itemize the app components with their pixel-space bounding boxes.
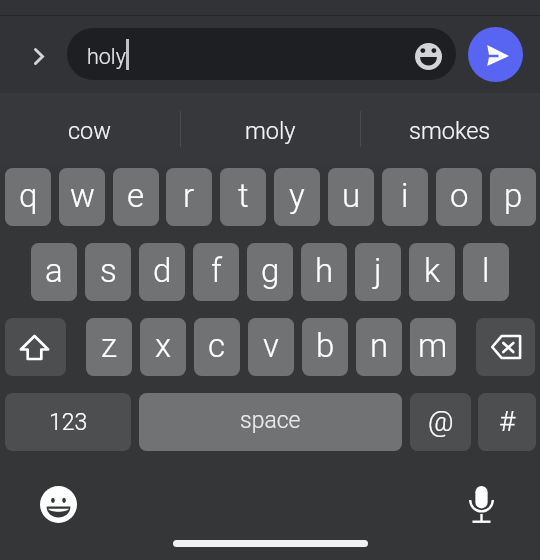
staticText: d [153,251,172,290]
button[interactable]: Emoji [412,40,444,72]
staticText: # [499,405,516,438]
button[interactable]: space [139,393,402,451]
button[interactable]: Emoji keyboard [37,483,79,525]
staticText: x [155,326,172,365]
button[interactable]: t [220,168,266,226]
staticText: o [450,176,469,215]
button[interactable]: cow [0,93,180,165]
button[interactable]: a [31,243,77,301]
staticText: k [424,251,441,290]
staticText: s [100,251,117,290]
button[interactable]: u [328,168,374,226]
staticText: i [401,176,409,215]
staticText: smokes [409,117,491,145]
staticText: w [70,176,95,215]
button[interactable]: d [139,243,185,301]
staticText: z [101,326,118,365]
staticText: e [127,176,145,215]
staticText: v [263,326,279,365]
button[interactable]: e [113,168,159,226]
staticText: r [183,176,195,215]
button[interactable]: p [490,168,536,226]
staticText: l [482,251,490,290]
staticText: cow [68,117,112,145]
staticText: moly [245,117,296,145]
button[interactable]: Backspace [476,318,535,376]
button[interactable]: Send [468,27,523,82]
button[interactable]: Expand actions [18,35,58,75]
staticText: y [289,176,305,215]
staticText: g [261,251,280,290]
button[interactable]: j [355,243,401,301]
button[interactable]: r [166,168,212,226]
staticText: c [208,326,226,365]
button[interactable]: v [248,318,294,376]
button[interactable]: moly [180,93,360,165]
staticText: t [238,176,249,215]
staticText: p [504,176,523,215]
staticText: 123 [49,409,88,436]
button[interactable]: @ [410,393,471,451]
staticText: a [45,251,63,290]
button[interactable]: q [5,168,51,226]
button[interactable]: x [140,318,186,376]
button[interactable]: c [194,318,240,376]
button[interactable]: n [356,318,402,376]
staticText: n [370,326,389,365]
button[interactable]: Voice input [459,481,503,525]
staticText: u [342,176,361,215]
button[interactable]: g [247,243,293,301]
button[interactable]: y [274,168,320,226]
button[interactable]: z [86,318,132,376]
button[interactable]: 123 [5,393,131,451]
button[interactable]: l [463,243,509,301]
staticText: q [19,176,38,215]
button[interactable]: i [382,168,428,226]
button[interactable]: holy [67,28,456,80]
button[interactable]: o [436,168,482,226]
button[interactable]: h [301,243,347,301]
button[interactable]: b [302,318,348,376]
staticText: holy [87,44,126,69]
button[interactable]: smokes [360,93,540,165]
button[interactable]: k [409,243,455,301]
button[interactable]: w [59,168,105,226]
button[interactable]: f [193,243,239,301]
staticText: b [316,326,335,365]
staticText: space [240,407,301,434]
button[interactable]: m [410,318,456,376]
staticText: @ [428,405,454,438]
staticText: h [315,251,334,290]
button[interactable]: s [85,243,131,301]
button[interactable]: # [478,393,536,451]
staticText: f [211,251,222,290]
staticText: j [374,251,382,290]
button[interactable]: Shift [5,318,66,376]
staticText: m [418,326,448,365]
